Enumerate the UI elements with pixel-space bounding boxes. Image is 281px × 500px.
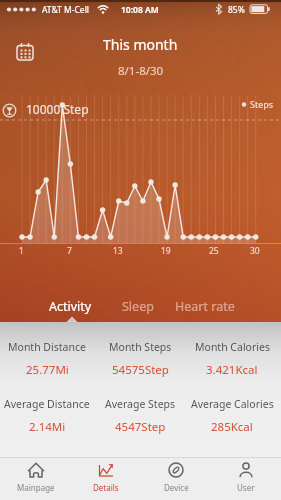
button[interactable]: Average Steps: [88, 397, 192, 435]
staticText: 10:08 AM: [121, 4, 159, 16]
button[interactable]: Details: [71, 457, 141, 500]
staticText: 4547Step: [115, 419, 166, 435]
button[interactable]: Activity: [36, 296, 104, 317]
staticText: 30: [250, 245, 260, 257]
staticText: 285Kcal: [211, 419, 253, 435]
staticText: 3.421Kcal: [206, 362, 258, 378]
staticText: Heart rate: [175, 298, 235, 315]
staticText: 8/1-8/30: [118, 63, 164, 79]
staticText: 7: [67, 245, 72, 257]
staticText: Month Calories: [195, 340, 270, 354]
button[interactable]: Month Steps: [88, 340, 192, 378]
staticText: 54575Step: [112, 362, 169, 378]
button[interactable]: Mainpage: [0, 457, 71, 500]
staticText: Steps: [250, 98, 274, 110]
staticText: User: [237, 482, 255, 493]
staticText: Average Steps: [105, 397, 176, 411]
button[interactable]: [12, 40, 38, 64]
staticText: 85%: [228, 4, 245, 16]
button[interactable]: Heart rate: [171, 296, 239, 317]
staticText: Activity: [49, 298, 92, 315]
staticText: Month Steps: [109, 340, 172, 354]
staticText: 13: [113, 245, 123, 257]
staticText: 2.14Mi: [29, 419, 66, 435]
staticText: 25: [209, 245, 219, 257]
staticText: Month Distance: [8, 340, 86, 354]
staticText: Average Distance: [4, 397, 90, 411]
button[interactable]: Month Calories: [180, 340, 281, 378]
staticText: Device: [164, 482, 189, 493]
staticText: This month: [103, 35, 178, 54]
staticText: Details: [93, 482, 119, 493]
staticText: 25.77Mi: [26, 362, 69, 378]
button[interactable]: Device: [141, 457, 211, 500]
staticText: Mainpage: [17, 482, 55, 493]
button[interactable]: Month Distance: [0, 340, 99, 378]
staticText: 10000 Step: [26, 101, 89, 117]
button[interactable]: User: [211, 457, 281, 500]
staticText: 19: [161, 245, 171, 257]
staticText: Average Calories: [191, 397, 274, 411]
button[interactable]: Average Distance: [0, 397, 99, 435]
staticText: 1: [19, 245, 24, 257]
button[interactable]: Average Calories: [180, 397, 281, 435]
button[interactable]: Sleep: [104, 296, 172, 317]
staticText: Sleep: [122, 298, 154, 315]
staticText: AT&T M-Cell: [42, 4, 90, 16]
